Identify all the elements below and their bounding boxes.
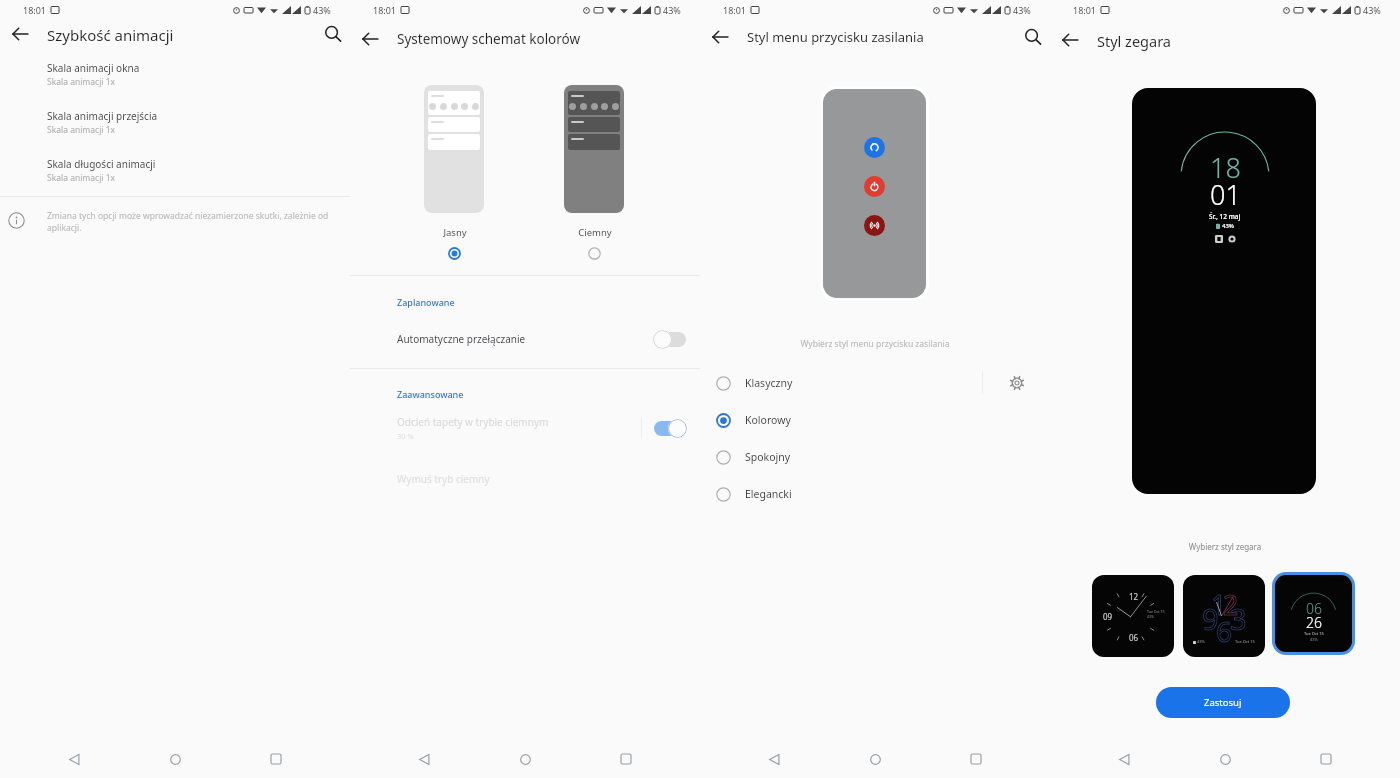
staticText: Automatyczne przełączanie bbox=[397, 332, 526, 346]
button[interactable]: Select option bbox=[700, 480, 1050, 508]
staticText: Wybierz styl menu przycisku zasilania bbox=[700, 338, 1050, 350]
staticText: 1 bbox=[1211, 586, 1227, 623]
button[interactable]: Home bbox=[1208, 742, 1242, 776]
button[interactable]: Select option bbox=[711, 371, 735, 395]
button[interactable]: Home bbox=[508, 742, 542, 776]
button[interactable]: Back bbox=[1059, 29, 1081, 51]
staticText: Śr., 12 maj bbox=[1209, 212, 1241, 221]
staticText: 43% bbox=[1222, 222, 1234, 230]
staticText: Spokojny bbox=[745, 450, 791, 464]
staticText: Skala długości animacji bbox=[47, 157, 156, 171]
button[interactable]: Wallet bbox=[1215, 235, 1223, 243]
staticText: 3 bbox=[1230, 599, 1247, 638]
button[interactable]: 12 bbox=[1092, 575, 1174, 657]
staticText: Tue Oct 15 bbox=[1235, 639, 1255, 644]
button[interactable] bbox=[424, 85, 484, 213]
button[interactable]: Camera bbox=[1228, 235, 1236, 243]
staticText: Skala animacji 1x bbox=[47, 172, 116, 184]
staticText: Skala animacji 1x bbox=[47, 124, 116, 136]
button[interactable]: Select option bbox=[711, 445, 735, 469]
button[interactable]: Skala długości animacji bbox=[0, 153, 350, 188]
button[interactable]: Automatyczne przełączanie bbox=[350, 325, 700, 353]
staticText: Skala animacji okna bbox=[47, 61, 140, 75]
staticText: Kolorowy bbox=[745, 413, 791, 427]
button[interactable]: Select option bbox=[700, 369, 982, 397]
button[interactable]: Back bbox=[709, 26, 731, 48]
staticText: Zmiana tych opcji może wprowadzać niezam… bbox=[47, 210, 352, 234]
staticText: Elegancki bbox=[745, 487, 792, 501]
button[interactable]: Recent apps bbox=[259, 742, 293, 776]
button[interactable]: Select option bbox=[700, 406, 1050, 434]
staticText: 12 bbox=[1129, 591, 1139, 602]
staticText: 06 bbox=[1306, 599, 1322, 618]
staticText: 43% bbox=[1197, 639, 1205, 644]
button[interactable]: Select option bbox=[700, 443, 1050, 471]
staticText: Szybkość animacji bbox=[47, 25, 174, 45]
staticText: 18 bbox=[1210, 149, 1241, 186]
button[interactable]: Wymuś tryb ciemny bbox=[350, 470, 700, 488]
staticText: 26 bbox=[1306, 613, 1322, 632]
staticText: Ciemny bbox=[563, 226, 627, 239]
staticText: 30 % bbox=[397, 431, 414, 441]
button[interactable]: Skala animacji okna bbox=[0, 57, 350, 92]
staticText: 43% bbox=[313, 4, 331, 16]
staticText: 43% bbox=[1363, 4, 1381, 16]
staticText: Systemowy schemat kolorów bbox=[397, 30, 581, 48]
staticText: 01 bbox=[1210, 176, 1241, 213]
staticText: Wybierz styl zegara bbox=[1050, 541, 1400, 552]
button[interactable]: 18 bbox=[1132, 88, 1316, 494]
button[interactable]: Back bbox=[9, 23, 31, 45]
button[interactable]: Select option bbox=[711, 408, 735, 432]
button[interactable] bbox=[564, 85, 624, 213]
staticText: 06 bbox=[1129, 632, 1139, 643]
button[interactable] bbox=[823, 89, 926, 298]
staticText: 18:01 bbox=[373, 4, 397, 16]
staticText: 18:01 bbox=[23, 4, 47, 16]
staticText: 18:01 bbox=[1073, 4, 1097, 16]
staticText: Klasyczny bbox=[745, 376, 793, 390]
staticText: Zaplanowane bbox=[397, 296, 455, 308]
button[interactable]: Select option bbox=[443, 242, 465, 264]
button[interactable]: Recent apps bbox=[609, 742, 643, 776]
button[interactable]: Back bbox=[757, 742, 791, 776]
staticText: Skala animacji przejścia bbox=[47, 109, 158, 123]
button[interactable]: Home bbox=[858, 742, 892, 776]
staticText: 43% bbox=[1310, 637, 1318, 642]
button[interactable]: Back bbox=[407, 742, 441, 776]
staticText: Zaawansowane bbox=[397, 388, 464, 400]
staticText: 6 bbox=[1216, 612, 1233, 650]
button[interactable]: Select option bbox=[711, 482, 735, 506]
staticText: 18:01 bbox=[723, 4, 747, 16]
button[interactable] bbox=[653, 328, 687, 350]
staticText: Styl menu przycisku zasilania bbox=[747, 28, 924, 46]
staticText: Odcień tapety w trybie ciemnym bbox=[397, 415, 549, 429]
staticText: Tue Oct 15 43% bbox=[1147, 609, 1165, 619]
button[interactable] bbox=[653, 417, 687, 439]
button[interactable]: Odcień tapety w trybie ciemnym bbox=[350, 412, 700, 444]
button[interactable]: Back bbox=[359, 28, 381, 50]
button[interactable]: Back bbox=[57, 742, 91, 776]
button[interactable]: Back bbox=[1107, 742, 1141, 776]
staticText: 09 bbox=[1103, 611, 1113, 622]
button[interactable]: Settings bbox=[983, 369, 1050, 397]
button[interactable]: Search bbox=[323, 24, 343, 44]
staticText: 43% bbox=[663, 4, 681, 16]
button[interactable]: Select option bbox=[583, 242, 605, 264]
button[interactable]: Recent apps bbox=[1309, 742, 1343, 776]
staticText: Skala animacji 1x bbox=[47, 76, 116, 88]
staticText: 2 bbox=[1223, 586, 1239, 623]
staticText: Jasny bbox=[423, 226, 487, 239]
staticText: Tue Oct 15 bbox=[1304, 631, 1324, 636]
button[interactable]: 06 bbox=[1275, 575, 1352, 652]
button[interactable]: Zastosuj bbox=[1156, 687, 1290, 718]
button[interactable]: Recent apps bbox=[959, 742, 993, 776]
staticText: 9 bbox=[1202, 599, 1219, 638]
staticText: 43% bbox=[1013, 4, 1031, 16]
button[interactable]: Skala animacji przejścia bbox=[0, 105, 350, 140]
button[interactable]: Search bbox=[1023, 27, 1043, 47]
button[interactable]: Home bbox=[158, 742, 192, 776]
button[interactable]: 1 bbox=[1183, 575, 1265, 657]
staticText: Styl zegara bbox=[1097, 31, 1171, 51]
staticText: Zastosuj bbox=[1204, 696, 1242, 709]
